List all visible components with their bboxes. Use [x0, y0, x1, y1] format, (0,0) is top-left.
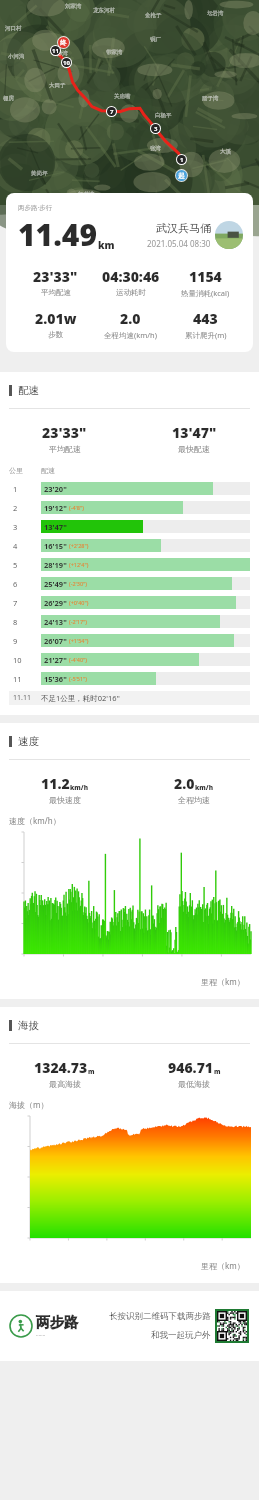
button[interactable]: 2 [9, 501, 250, 514]
staticText: 配速 [41, 466, 55, 475]
staticText: 张湾 [150, 145, 161, 152]
button[interactable]: 11 [9, 672, 250, 685]
button[interactable]: 2.01w [18, 309, 93, 339]
staticText: 28'19" [44, 560, 67, 570]
staticText: 海拔（m） [9, 1099, 49, 1110]
staticText: 武汉兵马俑 [156, 221, 211, 235]
staticText: (+1'54") [69, 637, 89, 644]
staticText: 10 [13, 655, 41, 665]
staticText: 11 [13, 674, 41, 684]
staticText: 2.0 [174, 774, 195, 793]
staticText: 热量消耗(kcal) [181, 288, 230, 298]
staticText: 累计爬升(m) [185, 330, 227, 340]
staticText: 刘家湾 [65, 3, 82, 10]
staticText: 2 [13, 503, 41, 513]
staticText: (+12'4") [69, 561, 89, 568]
button[interactable]: 11.2 [0, 774, 129, 805]
button[interactable]: 23'33" [0, 423, 129, 454]
button[interactable]: 配速 [9, 384, 259, 397]
button[interactable]: 5 [9, 558, 250, 571]
staticText: 7 [13, 598, 41, 608]
staticText: 24'13" [44, 617, 67, 627]
button[interactable]: 946.71 [129, 1058, 259, 1089]
staticText: 13'47" [172, 423, 217, 442]
staticText: (-4'8") [69, 504, 84, 511]
staticText: 2.0 [120, 309, 141, 328]
button[interactable]: 23'33" [18, 267, 93, 297]
button[interactable]: 1324.73 [0, 1058, 129, 1089]
staticText: (-4'40") [69, 656, 87, 663]
button[interactable]: 7 [9, 596, 250, 609]
button[interactable]: 10 [9, 653, 250, 666]
staticText: 11.49 [18, 214, 97, 255]
staticText: 步数 [48, 330, 63, 339]
staticText: 平均配速 [49, 444, 81, 454]
staticText: 速度（km/h） [9, 815, 61, 826]
button[interactable]: 6 [9, 577, 250, 590]
staticText: 全程均速(km/h) [104, 330, 157, 340]
staticText: 起 [178, 172, 185, 180]
staticText: 21'27" [44, 655, 67, 665]
staticText: 26'29" [44, 598, 67, 608]
button[interactable]: Download app QR code [0, 1291, 259, 1361]
staticText: 两步路 [36, 1314, 78, 1332]
button[interactable]: 443 [168, 309, 243, 340]
staticText: 1154 [189, 267, 222, 286]
staticText: 1 [13, 484, 41, 494]
button[interactable]: 3 [9, 520, 250, 533]
staticText: 里程（km） [201, 976, 245, 987]
staticText: 5 [13, 560, 41, 570]
button[interactable]: Map of route [0, 0, 259, 205]
staticText: 4 [13, 541, 41, 551]
staticText: 11 [52, 47, 59, 55]
staticText: 6 [13, 579, 41, 589]
button[interactable]: 1 [9, 482, 250, 495]
button[interactable]: 速度 [9, 735, 259, 748]
button[interactable]: 2.0 [129, 774, 259, 805]
button[interactable]: 4 [9, 539, 250, 552]
button[interactable]: 13'47" [129, 423, 259, 454]
staticText: 1 [180, 156, 184, 164]
button[interactable]: 两步路·步行 [6, 193, 253, 352]
button[interactable]: User avatar [215, 221, 243, 249]
button[interactable]: 11.11 [9, 691, 250, 705]
staticText: 11.11 [13, 693, 41, 703]
staticText: 最高海拔 [49, 1079, 81, 1089]
staticText: 最低海拔 [178, 1079, 210, 1089]
staticText: 04:30:46 [102, 267, 160, 286]
staticText: 坛岩湾 [207, 10, 224, 17]
staticText: 大田子 [49, 82, 66, 89]
staticText: m [88, 1067, 95, 1076]
staticText: 不足1公里，耗时02'16" [41, 693, 120, 703]
staticText: 1324.73 [34, 1058, 88, 1077]
staticText: km/h [195, 783, 214, 792]
button[interactable]: 2.0 [93, 309, 168, 340]
staticText: 铜厂 [150, 36, 161, 43]
button[interactable]: 8 [9, 615, 250, 628]
staticText: 河口村 [5, 25, 22, 32]
staticText: 配速 [18, 384, 39, 397]
staticText: (-2'17") [69, 618, 87, 625]
staticText: 2.01w [35, 309, 77, 328]
staticText: 15'36" [44, 674, 67, 684]
button[interactable]: 1154 [168, 267, 243, 298]
staticText: km [98, 238, 115, 252]
staticText: 关庙嘴 [114, 93, 131, 100]
staticText: 和我一起玩户外 [151, 1330, 211, 1341]
button[interactable]: Speed chart [0, 826, 259, 976]
staticText: 终 [60, 39, 67, 47]
staticText: 3 [13, 522, 41, 532]
button[interactable]: Elevation chart [0, 1110, 259, 1260]
button[interactable]: 海拔 [9, 1019, 259, 1032]
button[interactable]: 04:30:46 [93, 267, 168, 297]
staticText: 大溪 [220, 148, 231, 155]
staticText: 9 [13, 636, 41, 646]
staticText: 带家湾 [106, 49, 123, 56]
staticText: 棚房 [3, 95, 14, 102]
staticText: 运动耗时 [116, 288, 146, 297]
button[interactable]: 9 [9, 634, 250, 647]
staticText: 公里 [9, 466, 41, 475]
staticText: 7 [110, 108, 114, 116]
staticText: 黄岗坪 [31, 170, 48, 177]
staticText: 23'33" [33, 267, 78, 286]
